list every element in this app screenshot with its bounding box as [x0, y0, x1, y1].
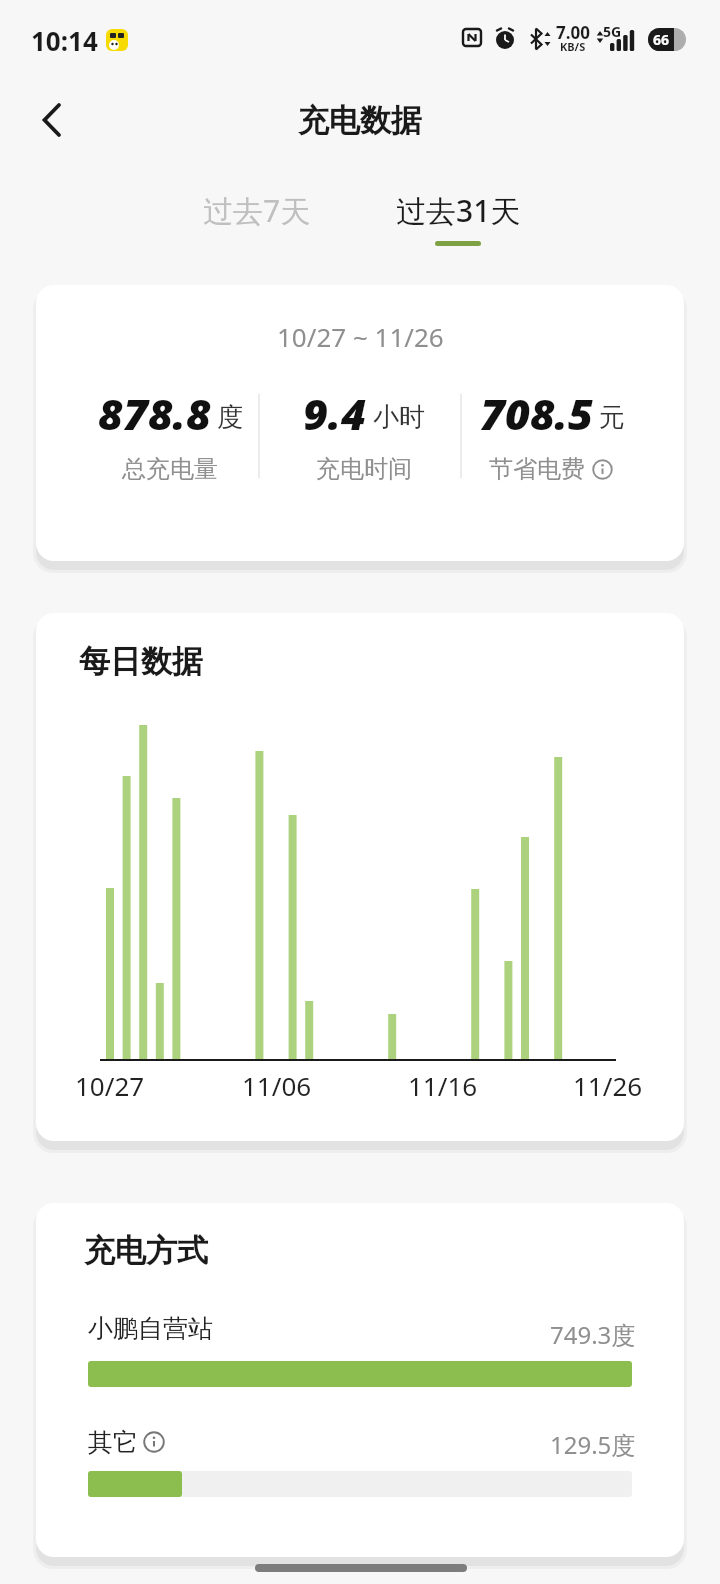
staticText: 11/06 [242, 1068, 312, 1102]
staticText: 9.4 [303, 384, 367, 434]
button[interactable]: 过去7天 [177, 188, 337, 232]
staticText: 充电方式 [84, 1231, 208, 1270]
staticText: 小鹏自营站 [88, 1313, 213, 1344]
staticText: 11/16 [408, 1068, 478, 1102]
staticText: 过去7天 [203, 190, 311, 231]
button[interactable] [88, 1361, 632, 1387]
button[interactable]: 过去31天 [368, 188, 548, 232]
staticText: 其它 [88, 1427, 138, 1458]
staticText: 节省电费 [489, 454, 585, 484]
staticText: 708.5 [480, 384, 593, 434]
staticText: 7.00 [556, 21, 590, 43]
staticText: 充电数据 [298, 101, 422, 140]
staticText: 小时 [373, 401, 425, 434]
staticText: 129.5度 [550, 1428, 636, 1461]
staticText: 878.8 [98, 384, 211, 434]
staticText: 749.3度 [550, 1318, 636, 1351]
staticText: KB/S [560, 39, 586, 53]
staticText: 过去31天 [396, 190, 521, 231]
staticText: 总充电量 [122, 454, 218, 484]
staticText: 元 [599, 401, 625, 434]
staticText: 每日数据 [79, 642, 203, 681]
staticText: 10/27 [75, 1068, 145, 1102]
staticText: 66 [653, 30, 670, 49]
staticText: 5G [603, 22, 622, 40]
staticText: 11/26 [573, 1068, 643, 1102]
staticText: 充电时间 [316, 454, 412, 484]
button[interactable] [30, 98, 74, 142]
button[interactable] [88, 1471, 182, 1497]
staticText: 10:14 [31, 23, 98, 57]
staticText: 10/27 ~ 11/26 [277, 319, 444, 354]
staticText: 度 [217, 401, 243, 434]
